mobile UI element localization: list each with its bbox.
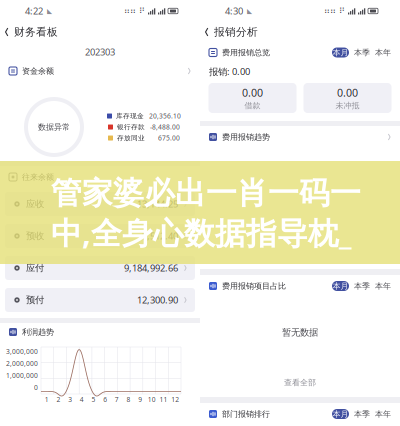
staticText: 本月 xyxy=(332,409,348,419)
button[interactable]: 费用报销趋势 xyxy=(200,126,400,148)
button[interactable]: 报销分析 xyxy=(200,22,400,42)
staticText: 资金余额 xyxy=(22,66,54,76)
button[interactable]: 本年 xyxy=(375,281,391,291)
staticText: 本季 xyxy=(354,281,370,291)
staticText: 4:22 xyxy=(25,5,43,17)
staticText: 8 xyxy=(126,395,130,404)
staticText: 本季 xyxy=(354,48,370,57)
button[interactable]: 应付 xyxy=(0,252,200,284)
staticText: 9 xyxy=(138,395,142,404)
staticText: 202303 xyxy=(85,46,115,58)
staticText: 报销分析 xyxy=(214,25,258,38)
staticText: 预收 xyxy=(26,230,44,242)
staticText: 费用报销项目占比 xyxy=(222,281,286,291)
button[interactable]: 本年 xyxy=(375,409,391,419)
staticText: 4:30 xyxy=(225,5,243,17)
staticText: 本月 xyxy=(332,48,348,57)
button[interactable]: 预收 xyxy=(0,220,200,252)
staticText: 1 xyxy=(45,395,49,404)
staticText: 中,全身心数据指导枕_ xyxy=(51,212,352,253)
staticText: ⠶⠶ ⠟ xyxy=(324,6,348,16)
staticText: 费用报销总览 xyxy=(222,48,270,57)
staticText: 3,000,000 xyxy=(6,347,38,356)
staticText: 借款 xyxy=(244,101,260,110)
staticText: 2,000,000 xyxy=(6,359,38,368)
staticText: 本年 xyxy=(375,48,391,57)
staticText: 0.00 xyxy=(337,85,358,100)
button[interactable]: 本季 xyxy=(354,409,370,419)
button[interactable]: 查看全部 xyxy=(200,368,400,397)
staticText: 应收 xyxy=(26,198,44,210)
staticText: 管家婆必出一肖一码一 xyxy=(51,174,361,212)
staticText: 3 xyxy=(68,395,72,404)
button[interactable]: 应收 xyxy=(0,188,200,220)
button[interactable]: 财务看板 xyxy=(0,22,200,42)
staticText: 10 xyxy=(148,395,156,404)
staticText: 查看全部 xyxy=(284,378,316,387)
staticText: 应付 xyxy=(26,262,44,274)
staticText: ◣ xyxy=(243,7,252,15)
button[interactable]: 本季 xyxy=(354,48,370,57)
staticText: 4 xyxy=(80,395,84,404)
staticText: 利润趋势 xyxy=(22,327,54,337)
button[interactable]: 本年 xyxy=(375,48,391,57)
staticText: 费用报销趋势 xyxy=(222,132,270,142)
staticText: 0 xyxy=(34,383,38,392)
staticText: -8,488.00 xyxy=(150,123,180,131)
staticText: 财务看板 xyxy=(14,25,58,38)
staticText: 5 xyxy=(91,395,95,404)
button[interactable]: 往来余额 xyxy=(0,166,200,188)
staticText: 本月 xyxy=(332,281,348,291)
staticText: 本季 xyxy=(354,409,370,419)
staticText: 20,356.10 xyxy=(149,112,181,120)
staticText: 7 xyxy=(115,395,119,404)
staticText: 6 xyxy=(103,395,107,404)
button[interactable]: 预付 xyxy=(0,284,200,316)
staticText: ⠶⠶ ⠟ xyxy=(124,6,148,16)
staticText: 675.00 xyxy=(158,134,180,142)
staticText: 2 xyxy=(56,395,60,404)
staticText: 报销: 0.00 xyxy=(209,65,250,78)
staticText: 暂无数据 xyxy=(282,327,318,338)
staticText: 数据异常 xyxy=(38,122,70,132)
staticText: 9,184,992.66 xyxy=(124,262,178,274)
staticText: ◣ xyxy=(43,7,52,15)
staticText: 8,512.40 xyxy=(142,230,178,242)
staticText: -13,144.25 xyxy=(134,198,178,210)
button[interactable]: 本季 xyxy=(354,281,370,291)
button[interactable]: 资金余额 xyxy=(0,62,200,80)
staticText: 本年 xyxy=(375,281,391,291)
staticText: 银行存款 xyxy=(117,123,145,131)
staticText: 部门报销排行 xyxy=(222,409,270,419)
staticText: 12,300.90 xyxy=(137,294,178,306)
button[interactable]: 本月 xyxy=(332,409,349,419)
staticText: 1,000,000 xyxy=(6,371,38,380)
staticText: 未冲抵 xyxy=(335,101,359,110)
button[interactable]: 本月 xyxy=(332,47,349,57)
staticText: 12 xyxy=(171,395,179,404)
staticText: 存放同业 xyxy=(117,134,145,142)
staticText: 往来余额 xyxy=(22,172,54,182)
staticText: 本年 xyxy=(375,409,391,419)
staticText: 11 xyxy=(159,395,167,404)
staticText: 预付 xyxy=(26,294,44,306)
staticText: 0.00 xyxy=(242,85,263,100)
button[interactable]: 本月 xyxy=(332,281,349,291)
staticText: 库存现金 xyxy=(116,112,144,120)
